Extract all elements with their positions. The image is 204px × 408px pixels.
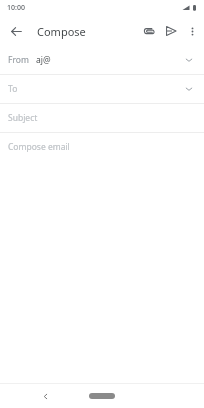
- staticText: Compose: [37, 24, 86, 39]
- button[interactable]: Expand: [182, 53, 196, 67]
- button[interactable]: Back: [5, 20, 27, 42]
- button[interactable]: To: [0, 75, 204, 103]
- button[interactable]: Expand: [182, 82, 196, 96]
- button[interactable]: Compose email: [0, 133, 204, 161]
- button[interactable]: From: [0, 46, 204, 74]
- button[interactable]: Attach file: [138, 20, 160, 42]
- button[interactable]: Send: [160, 20, 182, 42]
- button[interactable]: Back: [36, 387, 54, 405]
- button[interactable]: More options: [182, 21, 202, 41]
- staticText: 10:00: [7, 3, 25, 13]
- staticText: Subject: [8, 112, 38, 124]
- staticText: aj@: [36, 54, 51, 66]
- button[interactable]: Home: [89, 393, 115, 399]
- staticText: Compose email: [8, 141, 70, 153]
- staticText: From: [8, 54, 29, 66]
- staticText: To: [8, 83, 18, 95]
- button[interactable]: Subject: [0, 104, 204, 132]
